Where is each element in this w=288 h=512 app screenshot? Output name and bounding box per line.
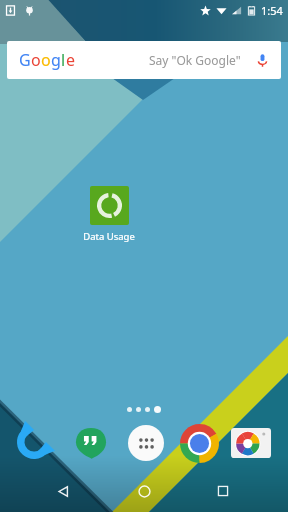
other: Voice search <box>255 53 270 68</box>
button[interactable]: Chrome <box>176 420 222 466</box>
staticText: o <box>31 49 41 71</box>
button[interactable]: Hangouts <box>68 420 114 466</box>
button[interactable]: Data Usage <box>73 186 145 243</box>
staticText: Say "Ok Google" <box>149 52 241 68</box>
button[interactable]: Home <box>123 470 165 512</box>
button[interactable]: Phone <box>10 420 56 466</box>
staticText: g <box>51 49 61 71</box>
button[interactable]: Back <box>42 470 84 512</box>
button[interactable]: All apps <box>123 420 169 466</box>
staticText: Data Usage <box>73 230 145 243</box>
staticText: e <box>66 49 76 71</box>
button[interactable]: G <box>7 41 281 79</box>
staticText: 1:54 <box>261 3 283 18</box>
staticText: l <box>61 49 66 71</box>
staticText: G <box>19 49 31 71</box>
staticText: o <box>41 49 51 71</box>
button[interactable]: Camera <box>228 420 274 466</box>
button[interactable]: Recents <box>202 470 244 512</box>
